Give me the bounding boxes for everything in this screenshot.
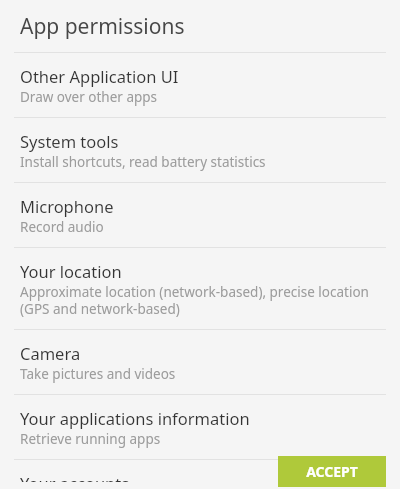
staticText: Draw over other apps bbox=[20, 88, 158, 106]
staticText: Camera bbox=[20, 342, 81, 364]
staticText: Your location bbox=[20, 260, 122, 282]
button[interactable]: Your location bbox=[0, 253, 400, 325]
staticText: Your accounts bbox=[20, 472, 130, 482]
staticText: Approximate location (network-based), pr… bbox=[20, 283, 384, 318]
staticText: Retrieve running apps bbox=[20, 430, 161, 448]
button[interactable]: Your accounts bbox=[0, 465, 400, 489]
button[interactable]: Other Application UI bbox=[0, 58, 400, 113]
staticText: Your applications information bbox=[20, 407, 250, 429]
staticText: Install shortcuts, read battery statisti… bbox=[20, 153, 266, 171]
staticText: System tools bbox=[20, 130, 119, 152]
button[interactable]: ACCEPT bbox=[278, 456, 386, 487]
button[interactable]: System tools bbox=[0, 123, 400, 178]
button[interactable]: Camera bbox=[0, 335, 400, 390]
staticText: App permissions bbox=[20, 12, 185, 41]
button[interactable]: Your applications information bbox=[0, 400, 400, 455]
staticText: Other Application UI bbox=[20, 65, 179, 87]
staticText: Record audio bbox=[20, 218, 104, 236]
staticText: Microphone bbox=[20, 195, 114, 217]
staticText: ACCEPT bbox=[306, 462, 358, 481]
staticText: Take pictures and videos bbox=[20, 365, 176, 383]
button[interactable]: Microphone bbox=[0, 188, 400, 243]
